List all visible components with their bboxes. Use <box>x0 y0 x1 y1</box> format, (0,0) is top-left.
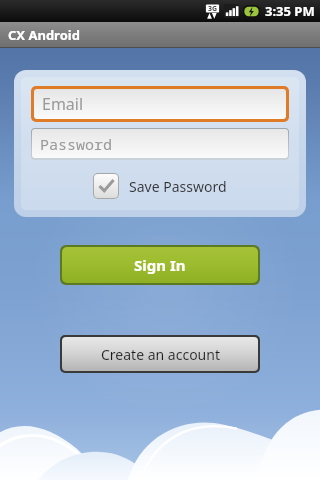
other: Signal strength <box>224 4 239 18</box>
button[interactable]: Password <box>32 129 288 158</box>
button[interactable]: Email <box>34 89 286 119</box>
staticText: 3:35 PM <box>265 2 315 20</box>
button[interactable]: Create an account <box>62 337 258 371</box>
staticText: Create an account <box>101 345 220 364</box>
staticText: Save Password <box>129 177 227 196</box>
other: 3G network <box>205 4 220 19</box>
staticText: Password <box>40 134 113 154</box>
staticText: 3G <box>208 4 218 14</box>
staticText: Email <box>42 93 84 115</box>
button[interactable]: Save Password <box>89 171 231 201</box>
other: Battery charging <box>243 5 260 18</box>
staticText: CX Android <box>8 26 80 44</box>
staticText: Sign In <box>134 255 186 275</box>
button[interactable]: Sign In <box>62 247 258 283</box>
